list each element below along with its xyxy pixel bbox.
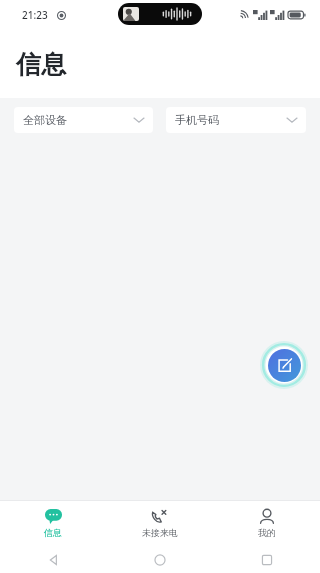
button[interactable]: 返回 (0, 546, 106, 573)
button[interactable]: 最近任务 (213, 546, 320, 573)
button[interactable]: 信息 (0, 501, 106, 546)
staticText: 全部设备 (23, 113, 134, 127)
staticText: 我的 (258, 527, 276, 538)
staticText: 21:23 (22, 8, 48, 22)
staticText: 手机号码 (175, 113, 287, 127)
button[interactable]: 全部设备 (14, 107, 153, 133)
button[interactable]: 新建信息 (260, 341, 308, 389)
button[interactable]: 未接来电 (106, 501, 213, 546)
button[interactable]: 主页 (106, 546, 213, 573)
staticText: 未接来电 (142, 527, 178, 538)
button[interactable]: 手机号码 (166, 107, 306, 133)
staticText: 信息 (44, 527, 62, 538)
staticText: 信息 (16, 49, 66, 80)
button[interactable]: 我的 (213, 501, 320, 546)
